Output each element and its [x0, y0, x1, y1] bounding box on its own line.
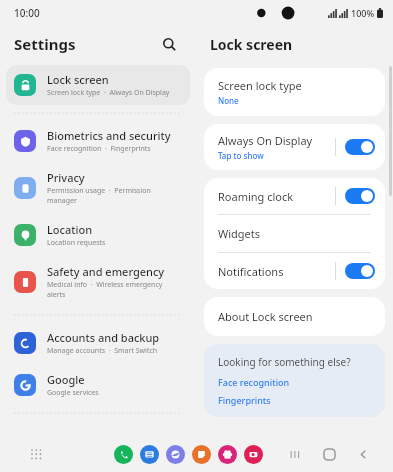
staticText: Notifications: [218, 264, 284, 279]
staticText: Location: [47, 222, 93, 237]
staticText: Lock screen: [210, 35, 293, 54]
button[interactable]: Toggle: [345, 263, 375, 279]
button[interactable]: Face recognition: [218, 376, 290, 388]
staticText: Settings: [14, 34, 156, 54]
button[interactable]: Home: [317, 442, 341, 466]
staticText: Location requests: [47, 238, 106, 248]
button[interactable]: Messages: [140, 445, 159, 464]
button[interactable]: Gallery: [218, 445, 237, 464]
button[interactable]: Back: [351, 442, 375, 466]
staticText: Privacy: [47, 170, 85, 185]
button[interactable]: Fingerprints: [218, 394, 271, 406]
staticText: Safety and emergency: [47, 264, 165, 279]
button[interactable]: Biometrics and security: [6, 121, 190, 161]
staticText: Medical info · Wireless emergency alerts: [47, 280, 182, 300]
staticText: About Lock screen: [218, 309, 313, 324]
button[interactable]: Google: [6, 365, 190, 405]
button[interactable]: Internet: [166, 445, 185, 464]
staticText: Roaming clock: [218, 189, 294, 204]
button[interactable]: Toggle: [345, 139, 375, 155]
button[interactable]: Toggle: [345, 188, 375, 204]
button[interactable]: Location: [6, 215, 190, 255]
staticText: Widgets: [218, 226, 261, 241]
button[interactable]: Search: [156, 31, 182, 57]
staticText: Screen lock type: [218, 78, 302, 93]
staticText: 100%: [351, 7, 375, 19]
button[interactable]: Lock screen: [6, 65, 190, 105]
staticText: Looking for something else?: [218, 355, 351, 369]
staticText: 10:00: [14, 6, 40, 20]
staticText: Permission usage · Permission manager: [47, 186, 182, 206]
staticText: Screen lock type · Always On Display: [47, 88, 170, 98]
button[interactable]: Phone: [114, 445, 133, 464]
button[interactable]: Camera: [244, 445, 263, 464]
button[interactable]: Widgets: [204, 215, 385, 252]
button[interactable]: Apps: [26, 444, 46, 464]
staticText: Accounts and backup: [47, 330, 160, 345]
staticText: None: [218, 95, 239, 106]
button[interactable]: Safety and emergency: [6, 257, 190, 307]
button[interactable]: About Lock screen: [204, 297, 385, 336]
button[interactable]: Notifications: [204, 253, 385, 289]
staticText: Tap to show: [218, 150, 264, 161]
staticText: Manage accounts · Smart Switch: [47, 346, 158, 356]
button[interactable]: Notes: [192, 445, 211, 464]
button[interactable]: Screen lock type: [204, 68, 385, 116]
button[interactable]: Always On Display: [204, 124, 385, 170]
staticText: Face recognition: [218, 376, 290, 388]
staticText: Biometrics and security: [47, 128, 171, 143]
button[interactable]: Privacy: [6, 163, 190, 213]
button[interactable]: Accounts and backup: [6, 323, 190, 363]
staticText: Face recognition · Fingerprints: [47, 144, 151, 154]
staticText: Fingerprints: [218, 394, 271, 406]
staticText: Lock screen: [47, 72, 109, 87]
staticText: Google: [47, 372, 85, 387]
staticText: Google services: [47, 388, 99, 398]
button[interactable]: Recents: [283, 442, 307, 466]
staticText: Always On Display: [218, 133, 313, 148]
button[interactable]: Roaming clock: [204, 178, 385, 214]
